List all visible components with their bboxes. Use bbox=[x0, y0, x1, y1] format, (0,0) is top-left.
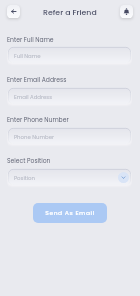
button[interactable]: Send As Email bbox=[33, 203, 107, 223]
button[interactable]: Notifications bbox=[120, 5, 133, 18]
button[interactable]: Back bbox=[7, 5, 20, 18]
staticText: Email Address bbox=[14, 93, 52, 101]
button[interactable]: Full Name bbox=[5, 44, 134, 68]
staticText: Position bbox=[14, 174, 35, 182]
button[interactable]: Phone Number bbox=[5, 125, 134, 149]
staticText: Enter Full Name bbox=[7, 36, 54, 44]
button[interactable]: Position bbox=[5, 166, 134, 190]
staticText: Enter Email Address bbox=[7, 76, 67, 84]
staticText: Refer a Friend bbox=[43, 7, 97, 18]
staticText: Phone Number bbox=[14, 133, 55, 141]
staticText: Send As Email bbox=[45, 209, 95, 217]
staticText: Enter Phone Number bbox=[7, 116, 69, 124]
staticText: Full Name bbox=[14, 52, 41, 60]
staticText: Select Position bbox=[7, 157, 51, 165]
button[interactable]: Email Address bbox=[5, 85, 134, 109]
button[interactable]: Open position dropdown bbox=[118, 172, 129, 183]
